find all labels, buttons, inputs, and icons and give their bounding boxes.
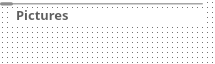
button[interactable]: Pictures xyxy=(16,6,69,24)
